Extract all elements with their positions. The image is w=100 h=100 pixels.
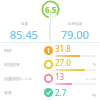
staticText: 6.5 [45, 4, 57, 15]
staticText: % [93, 63, 96, 67]
staticText: レベル [86, 77, 96, 81]
button[interactable]: BMI score 6.5 [41, 0, 60, 19]
button[interactable]: 体脂肪率 [0, 57, 100, 71]
button[interactable]: 目標体重 [50, 22, 100, 40]
button[interactable]: 内臓脂肪レベル [0, 71, 100, 85]
staticText: 79.00 [61, 27, 90, 40]
button[interactable]: BMI [0, 43, 100, 57]
staticText: 2.7 [55, 87, 67, 98]
staticText: 体重 [21, 22, 28, 26]
staticText: BMI [4, 48, 12, 53]
staticText: 内臓脂肪レベル [4, 76, 33, 81]
staticText: 目標体重 [68, 22, 82, 26]
staticText: 骨量 [4, 90, 12, 95]
staticText: kg [92, 93, 96, 97]
staticText: 体脂肪率 [4, 62, 20, 67]
staticText: 13 [55, 71, 65, 82]
button[interactable]: 骨量 [0, 85, 100, 99]
staticText: 31.8 [55, 43, 71, 54]
staticText: 85.45 [10, 27, 39, 40]
staticText: 27.0 [55, 57, 71, 68]
button[interactable]: 体重 [0, 22, 49, 40]
